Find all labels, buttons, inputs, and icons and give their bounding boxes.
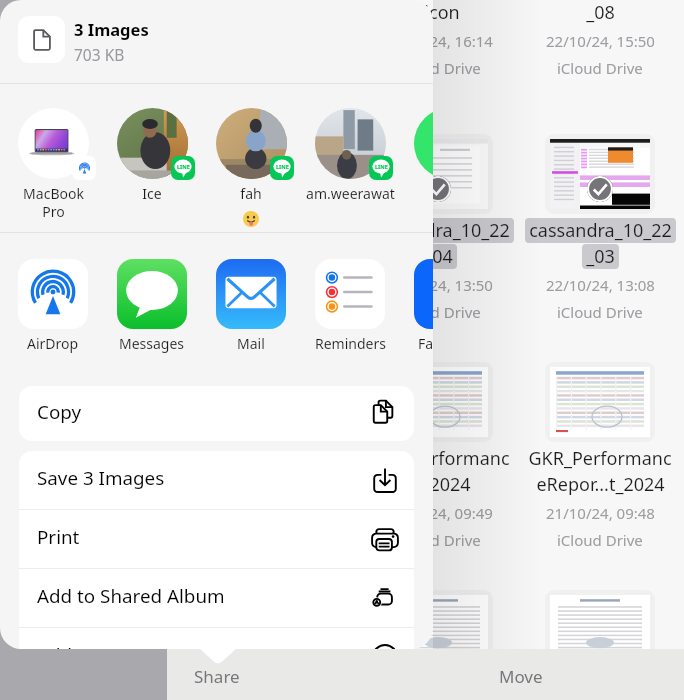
staticText: Reminders	[315, 334, 386, 353]
staticText: 22/10/24, 13:50	[384, 275, 493, 295]
button[interactable]: Print	[19, 510, 414, 568]
staticText: fah	[240, 184, 262, 203]
button[interactable]: Save 3 Images	[19, 451, 414, 509]
staticText: _08	[586, 0, 615, 25]
staticText: iCloud Drive	[395, 530, 481, 550]
staticText: Share	[194, 665, 240, 688]
staticText: LINE	[276, 163, 289, 170]
staticText: cassandra_10_22	[367, 218, 510, 243]
staticText: Move	[499, 665, 543, 688]
button[interactable]: AirDrop	[4, 259, 102, 353]
staticText: 3 Images	[74, 18, 149, 40]
button[interactable]: Mail	[202, 259, 300, 353]
button[interactable]: Add to Shared Album	[19, 569, 414, 627]
button[interactable]: LINE	[202, 108, 300, 203]
button[interactable]: MacBook Pro	[4, 108, 102, 221]
staticText: _04	[424, 244, 453, 269]
staticText: 22/10/24, 15:50	[546, 31, 655, 51]
staticText: Add to Shared Album	[37, 583, 225, 609]
button[interactable]: Add Tags	[19, 628, 414, 649]
staticText: 21/10/24, 09:48	[546, 503, 655, 523]
button[interactable]: Messages	[103, 259, 201, 353]
staticText: LINE	[177, 163, 190, 170]
button[interactable]: Facebook	[400, 259, 433, 353]
button[interactable]: Share	[167, 649, 267, 700]
staticText: iCloud Drive	[557, 302, 643, 322]
staticText: eRepor...t_2024	[536, 472, 665, 497]
staticText: Messages	[119, 334, 185, 353]
staticText: Facebook	[418, 334, 433, 353]
staticText: 703 KB	[74, 44, 125, 65]
staticText: LINE	[375, 163, 388, 170]
staticText: 22/10/24, 13:08	[546, 275, 655, 295]
staticText: iCloud Drive	[557, 58, 643, 78]
staticText: Save 3 Images	[37, 465, 165, 491]
staticText: Ice	[142, 184, 162, 203]
button[interactable]: Copy	[19, 386, 414, 441]
staticText: MacBook Pro	[23, 184, 84, 221]
button[interactable]: Reminders	[301, 259, 399, 353]
staticText: iCloud Drive	[395, 58, 481, 78]
staticText: 21/10/24, 09:49	[384, 503, 493, 523]
staticText: Copy	[37, 399, 82, 425]
staticText: iCloud Drive	[557, 530, 643, 550]
staticText: cassandra_10_22	[529, 218, 672, 243]
button[interactable]: LINE	[301, 108, 399, 203]
button[interactable]: LINE	[103, 108, 201, 203]
staticText: Add Tags	[37, 642, 118, 649]
staticText: GKR_Performanc	[528, 446, 672, 471]
staticText: _icon	[416, 0, 460, 25]
staticText: AirDrop	[27, 334, 79, 353]
button[interactable]	[400, 108, 433, 184]
staticText: 22/10/24, 16:14	[384, 31, 493, 51]
staticText: Print	[37, 524, 80, 550]
staticText: iCloud Drive	[395, 302, 481, 322]
staticText: GKR_Performanc	[366, 446, 510, 471]
staticText: Mail	[237, 334, 265, 353]
staticText: am.weerawat	[306, 184, 395, 203]
staticText: _03	[586, 244, 615, 269]
button[interactable]: Move	[471, 649, 571, 700]
staticText: ..t_2024	[405, 472, 471, 497]
